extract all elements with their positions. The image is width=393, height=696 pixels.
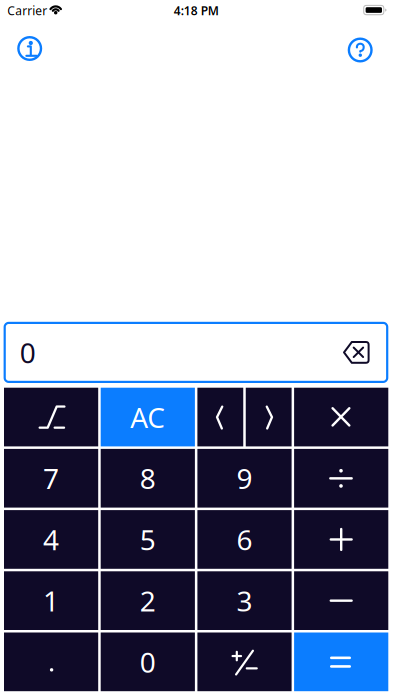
button[interactable]: Decimal point [4, 632, 98, 691]
button[interactable]: Close parenthesis [246, 388, 292, 446]
button[interactable]: 1 [4, 571, 98, 630]
button[interactable]: 3 [197, 571, 292, 630]
staticText: 9 [236, 460, 252, 497]
staticText: 1 [43, 582, 59, 619]
staticText: 0 [140, 643, 156, 680]
staticText: 0 [20, 334, 36, 371]
button[interactable]: Plus minus [197, 632, 292, 691]
button[interactable]: Divide [294, 449, 388, 508]
button[interactable]: 0 [101, 632, 195, 691]
staticText: AC [130, 398, 165, 436]
staticText: Carrier [7, 2, 47, 18]
button[interactable]: 8 [101, 449, 195, 508]
button[interactable]: Subtract [294, 571, 388, 630]
button[interactable]: Multiply [294, 388, 388, 446]
staticText: 6 [236, 521, 252, 558]
button[interactable]: Open parenthesis [197, 388, 243, 446]
button[interactable]: 5 [101, 510, 195, 569]
staticText: 7 [43, 460, 59, 497]
button[interactable]: 7 [4, 449, 98, 508]
button[interactable]: Add [294, 510, 388, 569]
staticText: 3 [236, 582, 252, 619]
button[interactable]: 9 [197, 449, 292, 508]
staticText: 4:18 PM [174, 2, 219, 18]
button[interactable]: Delete [343, 341, 387, 364]
button[interactable]: AC [101, 388, 195, 446]
staticText: 2 [140, 582, 156, 619]
button[interactable]: Function [4, 388, 98, 446]
staticText: 8 [140, 460, 156, 497]
button[interactable]: 2 [101, 571, 195, 630]
button[interactable]: Equals [294, 632, 388, 691]
button[interactable]: Info [17, 36, 42, 61]
button[interactable]: Help [348, 37, 373, 62]
staticText: 5 [140, 521, 156, 558]
staticText: 4 [43, 521, 59, 558]
button[interactable]: 4 [4, 510, 98, 569]
button[interactable]: 6 [197, 510, 292, 569]
